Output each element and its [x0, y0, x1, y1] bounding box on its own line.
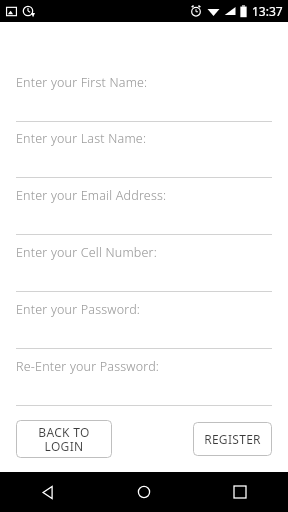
button[interactable]: Back	[0, 472, 96, 512]
staticText: Enter your First Name:	[16, 74, 148, 91]
staticText: BACK TO LOGIN	[38, 424, 90, 455]
staticText: Enter your Password:	[16, 301, 141, 318]
staticText: 13:37	[252, 3, 283, 19]
staticText: REGISTER	[204, 431, 261, 447]
staticText: Enter your Cell Number:	[16, 244, 157, 261]
button[interactable]: Home	[96, 472, 192, 512]
staticText: Enter your Email Address:	[16, 187, 167, 204]
button[interactable]: BACK TO LOGIN	[16, 420, 112, 458]
staticText: Re-Enter your Password:	[16, 358, 160, 375]
button[interactable]: REGISTER	[193, 422, 272, 456]
staticText: Enter your Last Name:	[16, 130, 147, 147]
button[interactable]: Recent apps	[192, 472, 288, 512]
